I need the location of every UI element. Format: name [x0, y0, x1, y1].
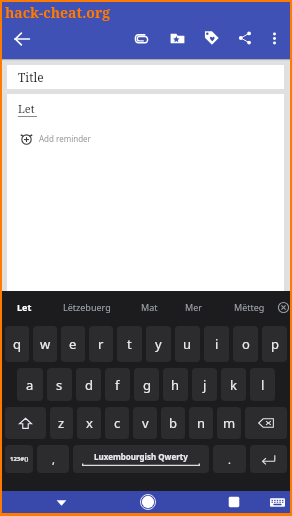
button[interactable]: s: [47, 368, 72, 401]
staticText: d: [85, 376, 93, 394]
staticText: Luxembourgish Qwerty: [94, 451, 188, 462]
staticText: v: [142, 414, 149, 432]
staticText: ,: [52, 452, 55, 467]
staticText: t: [127, 335, 132, 353]
button[interactable]: l: [250, 368, 275, 401]
staticText: Lëtzebuerg: [63, 301, 111, 313]
staticText: e: [69, 335, 77, 353]
button[interactable]: b: [161, 407, 185, 439]
button[interactable]: Backspace: [245, 407, 287, 439]
button[interactable]: Enter: [250, 445, 287, 473]
staticText: w: [40, 335, 51, 353]
button[interactable]: u: [175, 326, 200, 362]
button[interactable]: Home: [134, 491, 162, 513]
staticText: hack-cheat.org: [5, 3, 111, 22]
button[interactable]: r: [89, 326, 113, 362]
staticText: h: [171, 376, 180, 394]
button[interactable]: n: [189, 407, 213, 439]
button[interactable]: Labels: [198, 24, 224, 50]
button[interactable]: p: [262, 326, 287, 362]
button[interactable]: t: [117, 326, 142, 362]
button[interactable]: Shift: [5, 407, 46, 439]
staticText: k: [230, 376, 237, 394]
button[interactable]: Attach file: [128, 25, 154, 51]
button[interactable]: g: [134, 368, 159, 401]
button[interactable]: a: [17, 368, 43, 401]
button[interactable]: Share: [232, 25, 258, 51]
staticText: x: [86, 414, 93, 432]
button[interactable]: h: [163, 368, 188, 401]
staticText: Mat: [141, 301, 158, 313]
button[interactable]: Back: [47, 491, 75, 513]
staticText: o: [242, 335, 250, 353]
staticText: r: [98, 335, 104, 353]
button[interactable]: Back: [8, 25, 36, 53]
button[interactable]: Change keyboard: [263, 491, 291, 513]
button[interactable]: w: [33, 326, 57, 362]
staticText: m: [223, 414, 236, 432]
button[interactable]: Mat: [129, 291, 169, 323]
staticText: y: [155, 335, 162, 353]
button[interactable]: k: [221, 368, 246, 401]
button[interactable]: j: [192, 368, 217, 401]
button[interactable]: Recent apps: [220, 491, 248, 513]
staticText: z: [58, 414, 65, 432]
staticText: b: [169, 414, 177, 432]
staticText: Let: [18, 101, 35, 116]
staticText: .: [228, 452, 231, 467]
button[interactable]: y: [146, 326, 171, 362]
staticText: p: [271, 335, 279, 353]
button[interactable]: ,: [37, 445, 69, 473]
button[interactable]: Mëtteg: [223, 291, 275, 323]
button[interactable]: Space: [73, 445, 209, 473]
staticText: Mer: [185, 301, 202, 313]
staticText: g: [143, 376, 151, 394]
button[interactable]: Close suggestions: [271, 291, 292, 323]
button[interactable]: o: [233, 326, 258, 362]
button[interactable]: More options: [261, 25, 287, 51]
button[interactable]: v: [133, 407, 157, 439]
button[interactable]: Move to folder: [164, 25, 190, 51]
staticText: 123#(): [10, 455, 29, 463]
staticText: u: [183, 335, 192, 353]
staticText: Add reminder: [39, 133, 91, 144]
button[interactable]: Lëtzebuerg: [48, 291, 126, 323]
staticText: n: [197, 414, 206, 432]
staticText: Let: [17, 301, 32, 313]
button[interactable]: Symbols: [5, 445, 33, 473]
staticText: s: [56, 376, 63, 394]
button[interactable]: c: [105, 407, 129, 439]
staticText: Title: [18, 69, 44, 85]
button[interactable]: q: [5, 326, 29, 362]
staticText: q: [13, 335, 21, 353]
button[interactable]: d: [76, 368, 101, 401]
button[interactable]: m: [217, 407, 241, 439]
button[interactable]: f: [105, 368, 130, 401]
staticText: j: [203, 376, 207, 394]
button[interactable]: z: [50, 407, 73, 439]
button[interactable]: .: [213, 445, 246, 473]
staticText: l: [261, 376, 265, 394]
button[interactable]: Let: [4, 291, 44, 323]
button[interactable]: Mer: [173, 291, 213, 323]
button[interactable]: x: [77, 407, 101, 439]
staticText: a: [26, 376, 34, 394]
button[interactable]: Add reminder: [20, 132, 91, 145]
staticText: i: [215, 335, 219, 353]
staticText: f: [115, 376, 120, 394]
staticText: Mëtteg: [234, 301, 265, 313]
button[interactable]: i: [204, 326, 229, 362]
staticText: c: [114, 414, 121, 432]
button[interactable]: e: [61, 326, 85, 362]
